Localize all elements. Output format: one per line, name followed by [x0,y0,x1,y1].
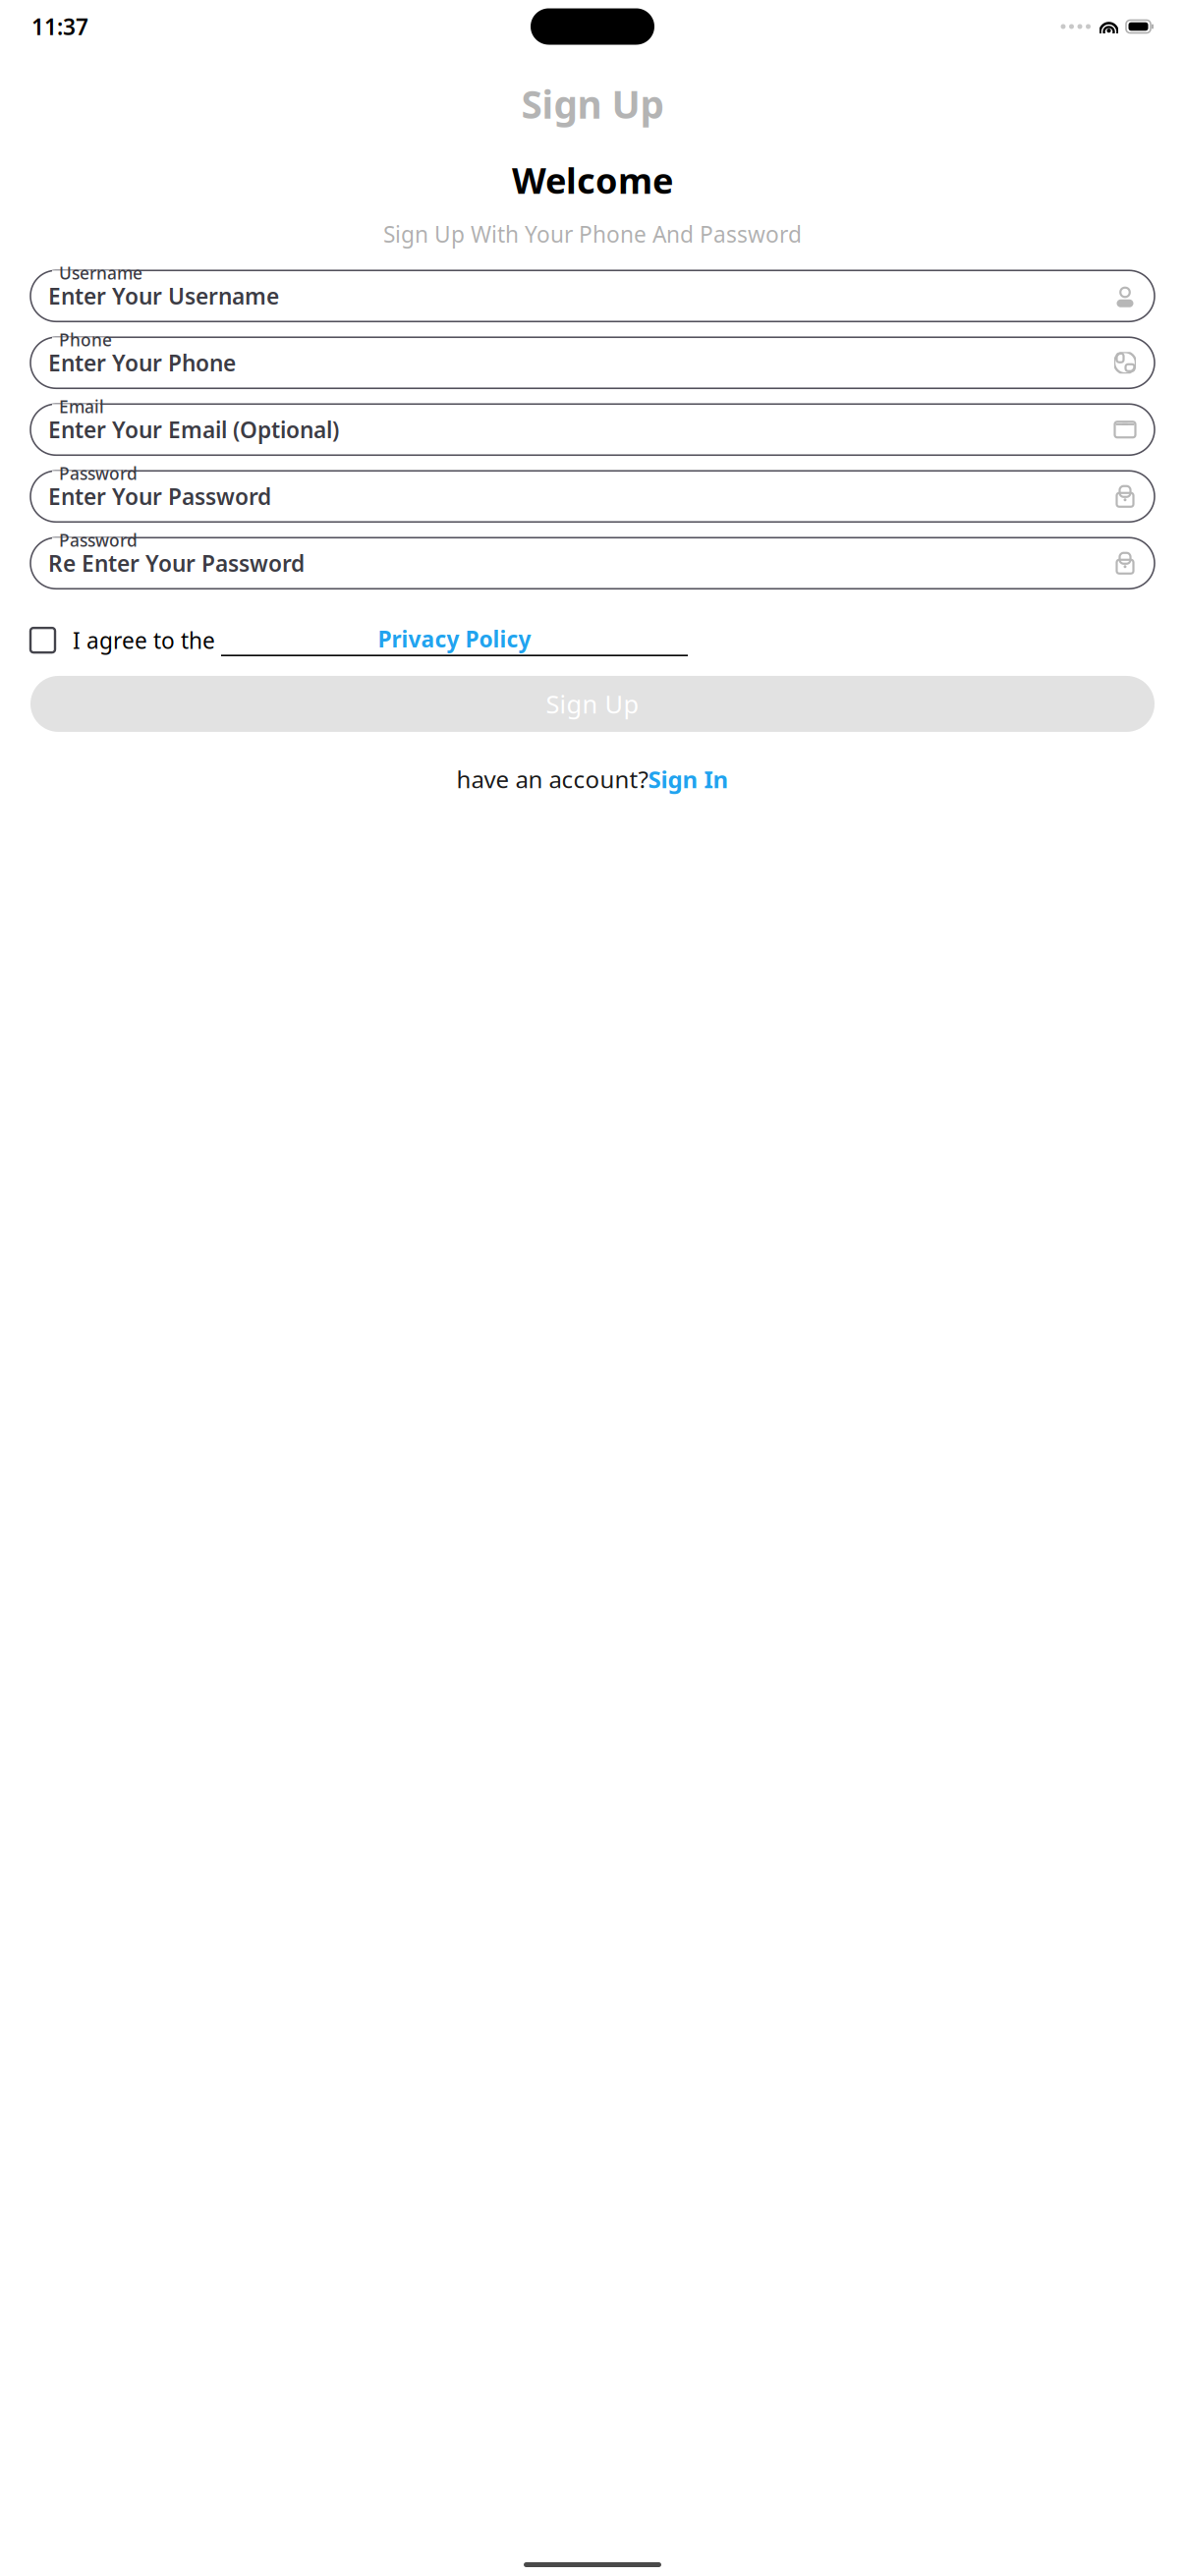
staticText: I agree to the [73,625,221,655]
staticText: 11:37 [31,12,88,41]
button[interactable]: Agree to Privacy Policy [30,628,73,652]
staticText: Username [59,262,142,284]
button[interactable]: Privacy Policy [221,624,688,656]
staticText: Sign Up [546,687,639,720]
staticText: Sign Up [521,79,664,129]
staticText: Enter Your Password [48,482,271,511]
button[interactable]: Email [30,404,1155,455]
button[interactable]: Password [30,538,1155,589]
button[interactable]: Sign Up [30,676,1155,732]
staticText: Sign Up With Your Phone And Password [383,219,802,249]
staticText: Enter Your Username [48,281,279,311]
staticText: Enter Your Phone [48,348,236,378]
button[interactable]: Username [30,270,1155,322]
button[interactable]: Password [30,471,1155,522]
staticText: Welcome [512,157,673,203]
staticText: Phone [59,328,112,351]
staticText: Password [59,462,138,485]
staticText: Password [59,529,138,551]
staticText: Privacy Policy [378,624,531,654]
staticText: Email [59,395,104,418]
staticText: Enter Your Email (Optional) [48,415,339,444]
staticText: Sign In [648,763,729,795]
staticText: have an account? [456,763,648,795]
staticText: Re Enter Your Password [48,548,305,578]
button[interactable]: Sign In [648,763,729,795]
button[interactable]: Phone [30,337,1155,388]
